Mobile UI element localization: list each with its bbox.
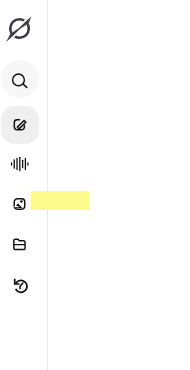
button[interactable]: Media: [1, 185, 39, 223]
button[interactable]: Audio: [1, 145, 39, 183]
button[interactable]: Files: [1, 225, 39, 263]
button[interactable]: Search: [1, 60, 39, 98]
button[interactable]: New note: [1, 106, 39, 144]
button[interactable]: Home: [0, 9, 38, 47]
button[interactable]: History: [1, 266, 39, 304]
